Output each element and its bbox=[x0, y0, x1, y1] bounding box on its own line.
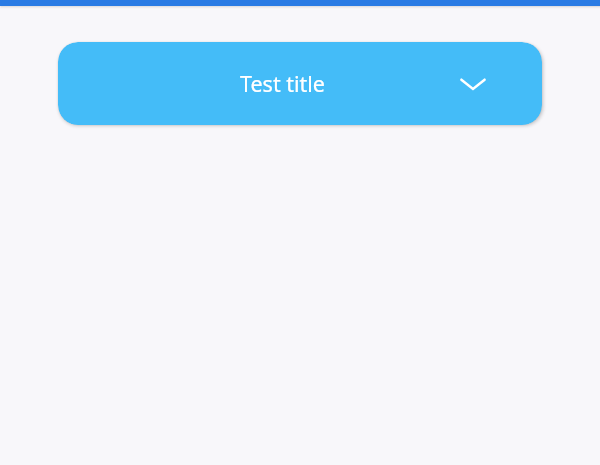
button[interactable]: Expand section bbox=[449, 60, 497, 108]
button[interactable]: Test title bbox=[58, 42, 542, 125]
staticText: Test title bbox=[116, 69, 449, 98]
